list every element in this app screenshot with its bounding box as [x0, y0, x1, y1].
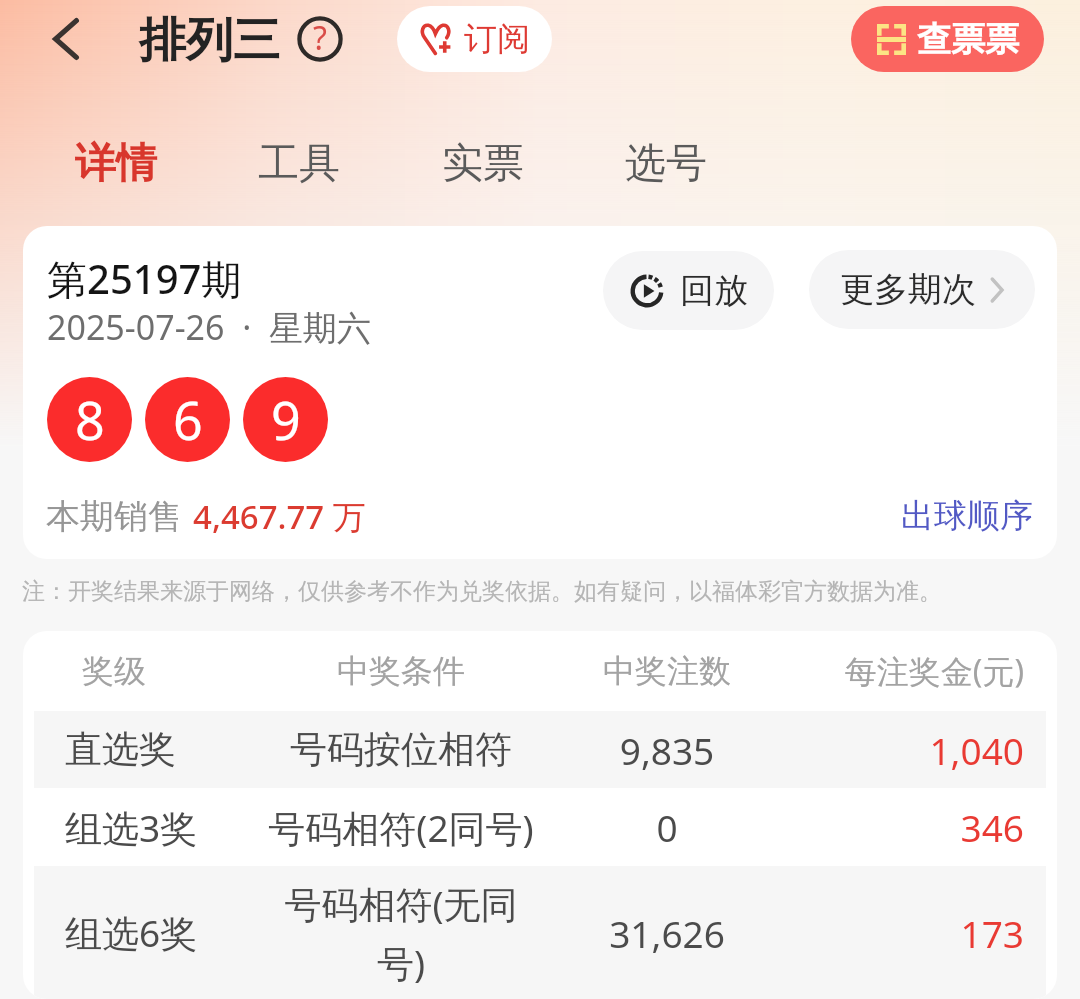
button[interactable]: 详情 — [45, 125, 187, 203]
staticText: 9 — [271, 384, 301, 455]
staticText: 号码按位相符 — [268, 726, 534, 773]
staticText: 4,467.77 万 — [193, 494, 366, 539]
staticText: ? — [313, 16, 327, 60]
staticText: 更多期次 — [840, 268, 976, 311]
staticText: 实票 — [442, 138, 524, 190]
staticText: 查票票 — [917, 18, 1019, 61]
staticText: 346 — [804, 802, 1024, 852]
button[interactable]: 查票票 — [851, 6, 1044, 72]
staticText: 9,835 — [567, 725, 767, 775]
button[interactable]: Help — [297, 16, 343, 62]
staticText: 排列三 — [139, 11, 280, 70]
button[interactable]: 实票 — [412, 125, 554, 203]
button[interactable]: 出球顺序 — [889, 491, 1033, 541]
staticText: 1,040 — [804, 725, 1024, 775]
button[interactable]: 工具 — [228, 125, 370, 203]
staticText: 出球顺序 — [901, 495, 1033, 537]
staticText: 回放 — [680, 269, 748, 312]
staticText: 组选6奖 — [65, 907, 231, 958]
staticText: 选号 — [625, 138, 707, 190]
staticText: 详情 — [75, 138, 157, 190]
staticText: 每注奖金(元) — [804, 649, 1024, 693]
button[interactable]: 选号 — [595, 125, 737, 203]
staticText: 8 — [75, 384, 105, 455]
staticText: 中奖条件 — [268, 651, 534, 691]
staticText: 订阅 — [464, 18, 530, 60]
button[interactable]: 回放 — [603, 251, 774, 330]
staticText: 31,626 — [567, 908, 767, 958]
staticText: 奖级 — [31, 651, 197, 691]
staticText: 中奖注数 — [567, 651, 767, 691]
button[interactable]: 订阅 — [397, 6, 552, 72]
staticText: 0 — [567, 802, 767, 852]
staticText: 173 — [804, 908, 1024, 958]
staticText: 直选奖 — [65, 726, 231, 773]
staticText: 号码相符(无同号) — [268, 878, 534, 988]
staticText: 第25197期 — [47, 251, 242, 306]
button[interactable]: Back — [36, 9, 96, 69]
staticText: 工具 — [258, 138, 340, 190]
button[interactable]: 更多期次 — [809, 250, 1035, 329]
staticText: 号码相符(2同号) — [268, 802, 534, 853]
staticText: 注：开奖结果来源于网络，仅供参考不作为兑奖依据。如有疑问，以福体彩官方数据为准。 — [22, 577, 942, 606]
staticText: 本期销售 — [46, 495, 182, 538]
staticText: 组选3奖 — [65, 802, 231, 853]
staticText: 6 — [173, 384, 203, 455]
staticText: 2025-07-26 · 星期六 — [47, 304, 371, 350]
